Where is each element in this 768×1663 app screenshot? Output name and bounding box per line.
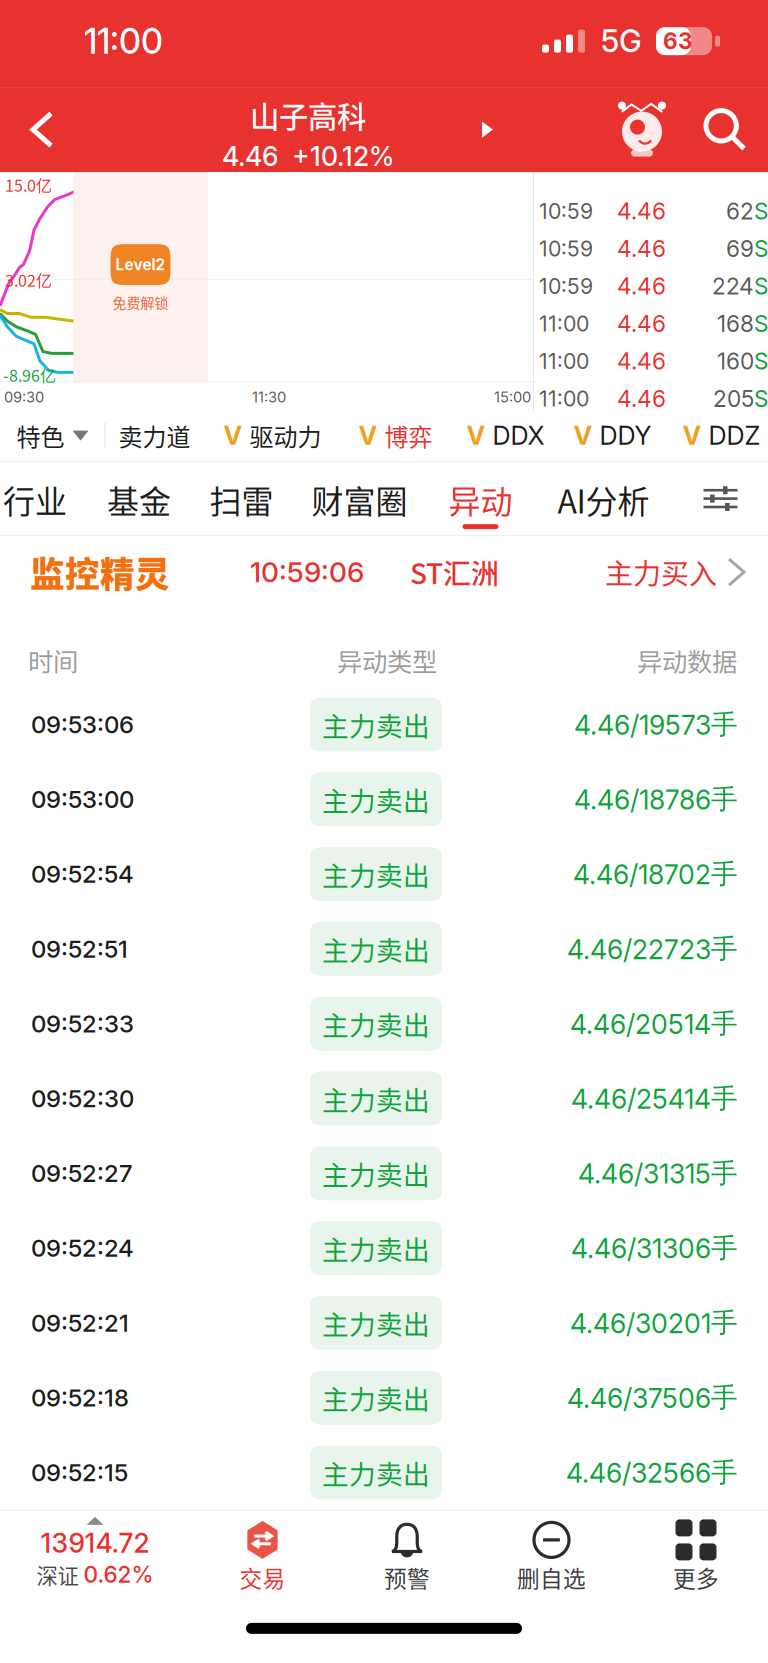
button[interactable]: 13914.72 xyxy=(0,1511,190,1612)
button[interactable]: V xyxy=(338,410,452,461)
button[interactable]: 09:52:21 xyxy=(0,1285,768,1360)
button[interactable]: 09:52:30 xyxy=(0,1061,768,1136)
staticText: 10:59:06 xyxy=(250,555,364,589)
staticText: S xyxy=(754,198,768,225)
button[interactable]: 智能助手 xyxy=(602,87,682,172)
button[interactable]: 返回 xyxy=(0,87,84,172)
staticText: S xyxy=(754,235,768,262)
staticText: 更多 xyxy=(673,1561,719,1594)
staticText: -8.96亿 xyxy=(3,363,56,386)
button[interactable]: V xyxy=(666,410,768,461)
button[interactable]: 搜索 xyxy=(682,87,768,172)
button[interactable]: 设置 xyxy=(672,462,768,535)
staticText: 免费解锁 xyxy=(112,292,168,312)
staticText: AI分析 xyxy=(557,476,649,523)
button[interactable]: 09:52:54 xyxy=(0,837,768,911)
staticText: S xyxy=(754,273,768,300)
staticText: 异动 xyxy=(448,476,512,523)
staticText: 5G xyxy=(601,22,642,60)
button[interactable]: V xyxy=(558,410,666,461)
staticText: 63 xyxy=(663,27,693,55)
button[interactable]: 监控精灵 xyxy=(0,536,768,608)
staticText: 主力卖出 xyxy=(322,1229,430,1267)
button[interactable]: 09:52:27 xyxy=(0,1136,768,1211)
button[interactable]: 09:53:06 xyxy=(0,687,768,762)
staticText: 4.46/22723手 xyxy=(567,932,738,966)
button[interactable]: 09:52:33 xyxy=(0,986,768,1061)
staticText: DDY xyxy=(599,420,651,451)
staticText: 删自选 xyxy=(517,1561,586,1594)
staticText: 09:53:06 xyxy=(31,710,134,739)
staticText: 驱动力 xyxy=(249,418,321,453)
staticText: 主力卖出 xyxy=(322,855,430,893)
staticText: 4.46/31306手 xyxy=(571,1231,738,1265)
staticText: 205 xyxy=(713,385,754,412)
staticText: 10:59 xyxy=(539,236,593,262)
staticText: 交易 xyxy=(239,1561,285,1594)
staticText: 主力卖出 xyxy=(322,1079,430,1118)
staticText: 监控精灵 xyxy=(30,547,170,597)
staticText: 11:00 xyxy=(539,311,589,337)
staticText: 62 xyxy=(726,198,754,225)
staticText: S xyxy=(754,348,768,375)
button[interactable]: 更多 xyxy=(624,1511,768,1612)
button[interactable]: 09:52:18 xyxy=(0,1360,768,1435)
staticText: 10:59 xyxy=(539,198,593,224)
button[interactable]: 基金 xyxy=(87,462,190,535)
staticText: 特色 xyxy=(16,418,64,453)
staticText: 09:52:21 xyxy=(31,1308,129,1337)
staticText: 11:00 xyxy=(84,20,163,62)
button[interactable]: AI分析 xyxy=(534,462,672,535)
staticText: 10:59 xyxy=(539,273,593,299)
staticText: 山子高科 xyxy=(250,94,366,136)
staticText: ST汇洲 xyxy=(410,552,499,592)
button[interactable]: 卖力道 xyxy=(105,410,206,461)
button[interactable]: 行业 xyxy=(0,462,87,535)
staticText: 69 xyxy=(726,235,754,262)
staticText: 异动类型 xyxy=(337,642,437,678)
staticText: 深证 xyxy=(36,1559,78,1590)
button[interactable]: 扫雷 xyxy=(190,462,292,535)
button[interactable]: 09:52:51 xyxy=(0,911,768,986)
staticText: S xyxy=(754,310,768,337)
staticText: V xyxy=(358,420,377,451)
staticText: 卖力道 xyxy=(118,418,190,453)
staticText: 11:00 xyxy=(539,348,589,374)
staticText: 主力卖出 xyxy=(322,1304,430,1342)
staticText: 主力买入 xyxy=(605,552,717,592)
staticText: 09:52:30 xyxy=(31,1084,134,1113)
staticText: 时间 xyxy=(28,642,78,678)
staticText: 160 xyxy=(717,348,754,375)
staticText: 主力卖出 xyxy=(322,1453,430,1492)
button[interactable]: V xyxy=(206,410,338,461)
staticText: 主力卖出 xyxy=(322,1378,430,1417)
staticText: 4.46/37506手 xyxy=(567,1381,738,1414)
button[interactable]: 异动 xyxy=(426,462,534,535)
staticText: 4.46 xyxy=(617,348,666,375)
button[interactable]: 预警 xyxy=(335,1511,479,1612)
staticText: 0.62% xyxy=(83,1561,153,1588)
staticText: 4.46/20514手 xyxy=(570,1007,738,1040)
button[interactable]: 交易 xyxy=(190,1511,335,1612)
button[interactable]: 特色 xyxy=(0,410,104,461)
staticText: 扫雷 xyxy=(209,476,273,523)
staticText: 168 xyxy=(717,310,754,337)
button[interactable]: 09:52:15 xyxy=(0,1435,768,1510)
button[interactable]: 09:52:24 xyxy=(0,1211,768,1285)
staticText: 13914.72 xyxy=(40,1527,149,1559)
staticText: DDX xyxy=(492,420,544,451)
staticText: 09:52:24 xyxy=(31,1234,134,1263)
staticText: 09:52:27 xyxy=(31,1159,132,1188)
staticText: 11:00 xyxy=(539,386,589,412)
button[interactable]: 删自选 xyxy=(479,1511,624,1612)
staticText: 4.46/19573手 xyxy=(574,708,738,741)
button[interactable]: 财富圈 xyxy=(292,462,426,535)
staticText: 预警 xyxy=(384,1561,430,1594)
staticText: 4.46 xyxy=(617,198,666,225)
staticText: 15.0亿 xyxy=(5,173,52,196)
button[interactable]: V xyxy=(452,410,558,461)
button[interactable]: 09:53:00 xyxy=(0,762,768,837)
staticText: 4.46/32566手 xyxy=(566,1456,738,1489)
staticText: 财富圈 xyxy=(311,476,407,523)
staticText: 主力卖出 xyxy=(322,930,430,968)
